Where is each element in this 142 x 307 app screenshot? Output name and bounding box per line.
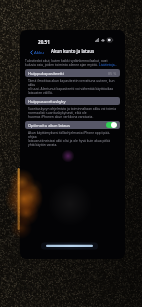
staticText: kuluvia osia, joiden toiminto alenee aja… [25,63,99,67]
staticText: Tämä ilmoittaa akun kapasiteetin verratt… [28,79,117,95]
staticText: Optimoitu akun lataus [28,123,70,128]
staticText: Suorituskyvyn ohjelmisto ja toiminnaltaa… [28,107,116,119]
staticText: Huippusuorituskyky [28,99,66,104]
button[interactable]: Huippukapasiteetti [25,69,120,77]
button[interactable]: Optimoitu akun lataus [106,122,117,128]
staticText: Akku [34,49,44,55]
staticText: Akun kunto ja lataus [51,48,95,54]
staticText: Tulostiedot akut, kuten kaikki sydänkenn… [25,59,108,63]
staticText: 20.51 [38,39,50,45]
button[interactable]: Optimoitu akun lataus [25,121,120,129]
button[interactable]: Huippusuorituskyky [25,97,120,105]
button[interactable]: Lisätietoja… [99,63,118,67]
staticText: Huippukapasiteetti [28,71,64,76]
button[interactable]: Akku [28,47,46,57]
staticText: Akun käyttämyksesi tälläohjelmasta iPhon… [28,131,117,147]
staticText: 85 % [108,71,117,76]
